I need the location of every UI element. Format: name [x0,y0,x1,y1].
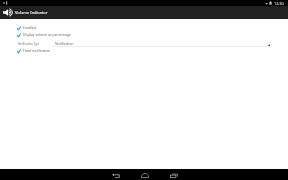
button[interactable]: Volume Indicator icon [0,6,288,19]
button[interactable]: Display volume as percentage [17,32,71,37]
staticText: Notification Type [18,42,40,46]
button[interactable]: Recent apps [162,170,186,180]
button[interactable]: Home [133,170,157,180]
button[interactable]: Enabled [17,25,36,30]
button[interactable]: Back [104,170,128,180]
button[interactable]: Fixed notification [17,48,51,53]
staticText: Fixed notification [23,48,51,53]
staticText: 12:30 [274,1,284,6]
staticText: Notification [55,41,74,46]
staticText: Enabled [23,25,36,30]
staticText: Volume Indicator [15,10,48,15]
staticText: Display volume as percentage [23,32,71,37]
button[interactable]: Notification Type [0,41,288,46]
other: Volume Indicator icon [3,9,14,16]
